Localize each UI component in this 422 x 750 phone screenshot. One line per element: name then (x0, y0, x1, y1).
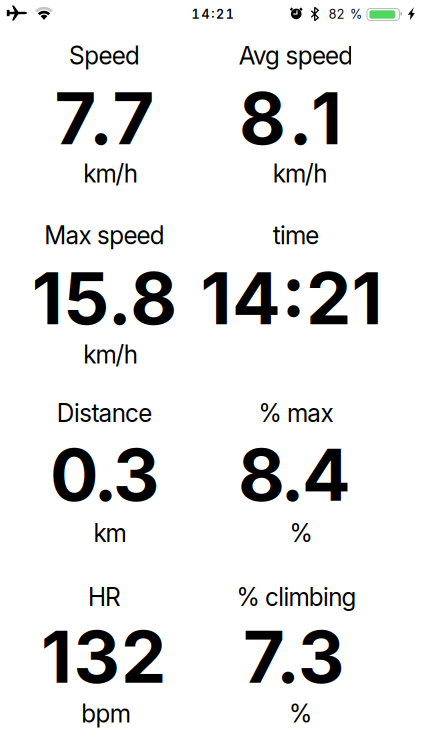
staticText: 7.7 (54, 74, 155, 161)
staticText: HR (88, 582, 121, 612)
staticText: km/h (83, 340, 138, 369)
staticText: % (350, 7, 362, 22)
staticText: 14:21 (200, 254, 382, 341)
staticText: km/h (83, 159, 138, 189)
staticText: 0.3 (50, 431, 159, 518)
staticText: % climbing (237, 582, 356, 612)
staticText: 8.1 (239, 74, 342, 161)
staticText: time (273, 220, 319, 250)
staticText: 8.4 (238, 431, 351, 518)
staticText: 15.8 (32, 254, 177, 341)
staticText: Distance (57, 398, 152, 428)
staticText: 7.3 (243, 613, 344, 700)
staticText: Max speed (44, 220, 165, 250)
staticText: 132 (41, 613, 166, 700)
staticText: % max (259, 398, 333, 428)
staticText: 14:21 (192, 7, 234, 22)
staticText: km/h (273, 159, 327, 189)
staticText: km (93, 518, 127, 548)
staticText: % (289, 699, 312, 728)
staticText: 82 (328, 7, 344, 22)
staticText: bpm (81, 699, 131, 728)
staticText: % (289, 518, 312, 548)
staticText: Avg speed (239, 41, 353, 70)
staticText: Speed (69, 41, 140, 70)
